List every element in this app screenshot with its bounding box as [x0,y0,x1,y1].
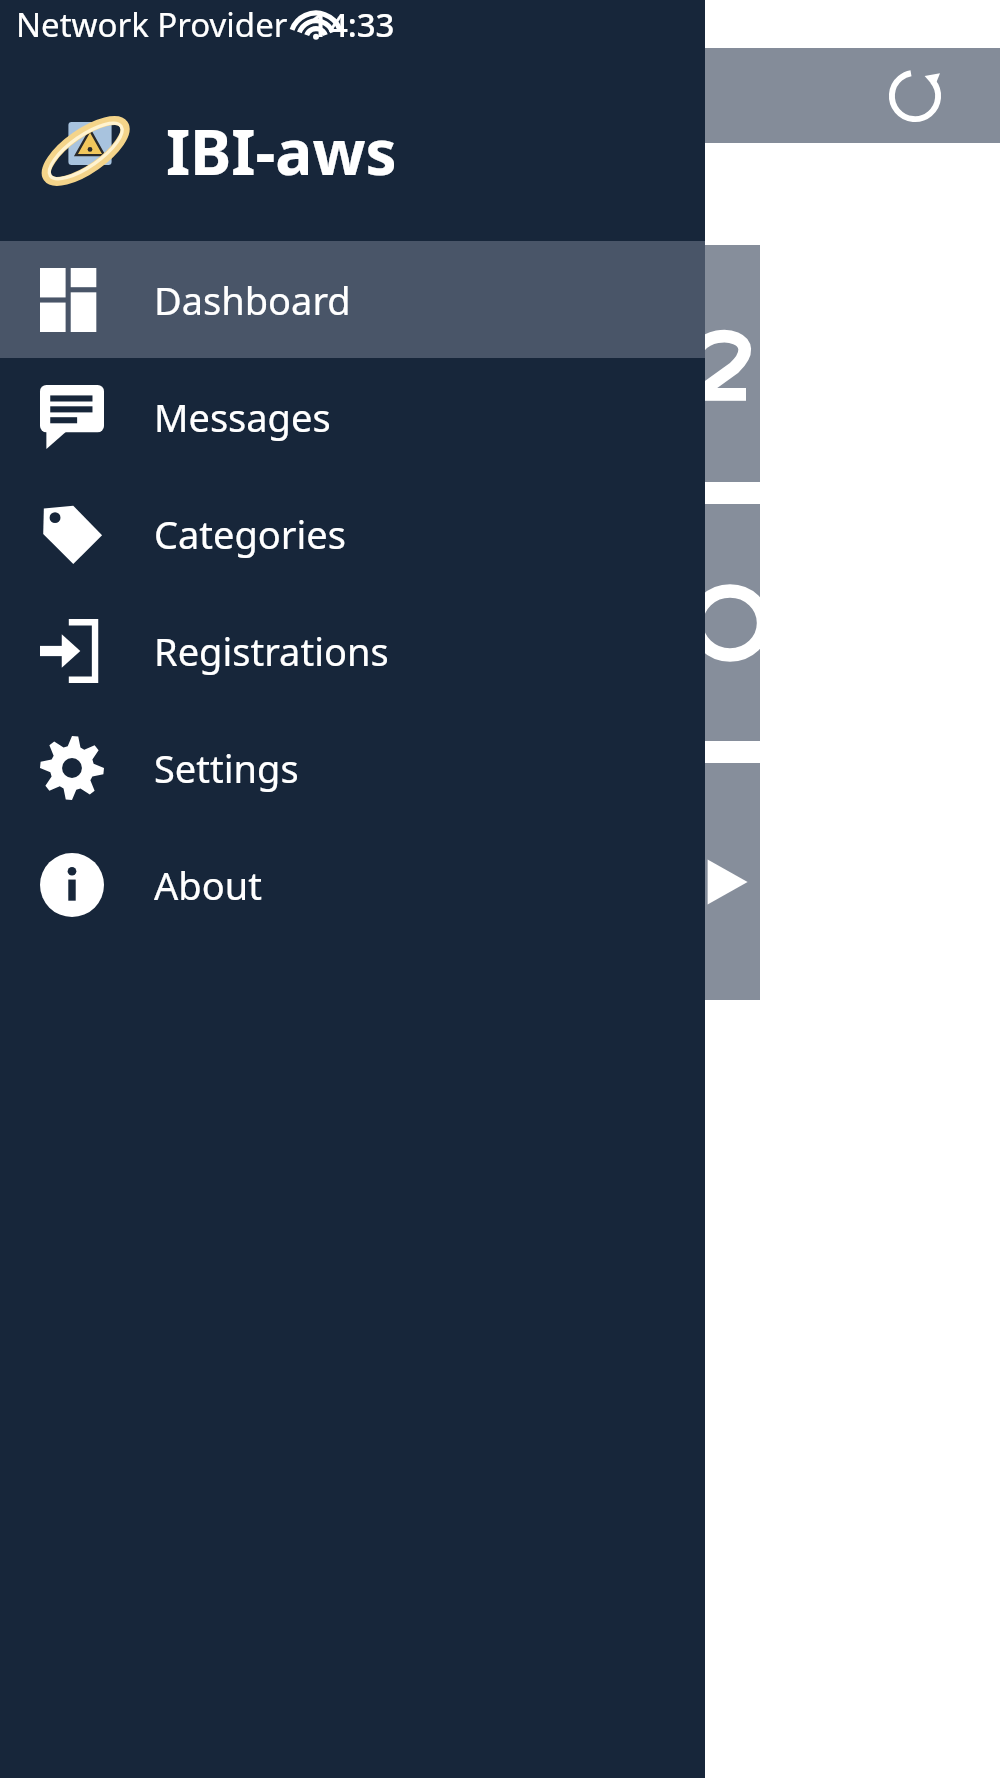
button[interactable]: Dashboard [0,241,705,358]
button[interactable]: Refresh [880,61,950,131]
staticText: IBI-aws [166,109,397,193]
staticText: Messages [154,391,331,443]
button[interactable]: About [0,826,705,943]
button[interactable] [30,504,760,741]
button[interactable]: Messages [0,358,705,475]
button[interactable] [30,763,760,1000]
staticText: Dashboard [154,274,351,326]
staticText: 14:33 [310,2,395,47]
button[interactable]: Registrations [0,592,705,709]
staticText: Settings [154,742,299,794]
staticText: Categories [154,508,346,560]
button[interactable] [30,245,760,482]
button[interactable]: Categories [0,475,705,592]
staticText: Network Provider [16,2,288,47]
staticText: About [154,859,262,911]
button[interactable]: Settings [0,709,705,826]
staticText: Registrations [154,625,389,677]
